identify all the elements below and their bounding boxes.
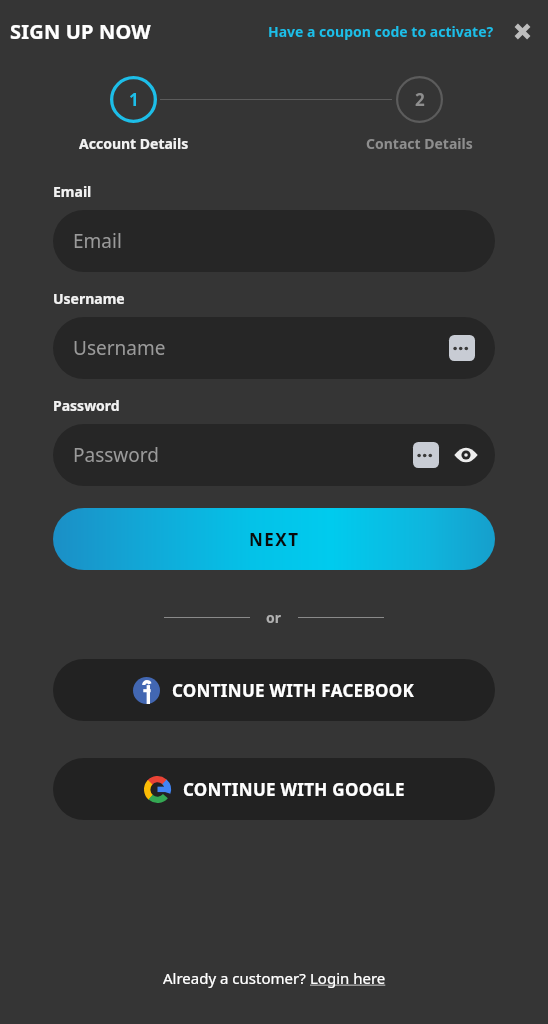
button[interactable]: NEXT — [53, 508, 495, 570]
button[interactable]: Suggestions — [411, 440, 441, 470]
staticText: CONTINUE WITH GOOGLE — [183, 778, 405, 801]
button[interactable]: Username — [53, 317, 495, 379]
button[interactable]: 2 — [341, 76, 498, 153]
staticText: NEXT — [249, 528, 300, 551]
button[interactable]: Close — [502, 11, 542, 51]
button[interactable]: Show password — [451, 440, 481, 470]
button[interactable]: Have a coupon code to activate? — [268, 22, 494, 41]
staticText: Password — [73, 442, 159, 468]
button[interactable]: 1 — [55, 76, 212, 153]
staticText: Already a customer? — [163, 968, 310, 988]
staticText: Password — [53, 396, 120, 415]
button[interactable]: Email — [53, 210, 495, 272]
button[interactable]: Suggestions — [447, 333, 477, 363]
staticText: Email — [73, 228, 122, 254]
button[interactable]: Password — [53, 424, 495, 486]
staticText: CONTINUE WITH FACEBOOK — [172, 679, 415, 702]
staticText: 2 — [415, 88, 425, 111]
staticText: Email — [53, 182, 92, 201]
button[interactable]: SIGN UP NOW — [10, 18, 151, 45]
button[interactable]: CONTINUE WITH GOOGLE — [53, 758, 495, 820]
staticText: Contact Details — [366, 134, 473, 153]
staticText: Username — [73, 335, 166, 361]
staticText: or — [266, 608, 282, 626]
staticText: Account Details — [79, 134, 189, 153]
staticText: Username — [53, 289, 125, 308]
button[interactable]: CONTINUE WITH FACEBOOK — [53, 659, 495, 721]
button[interactable]: Login here — [310, 968, 386, 988]
staticText: 1 — [129, 88, 139, 111]
